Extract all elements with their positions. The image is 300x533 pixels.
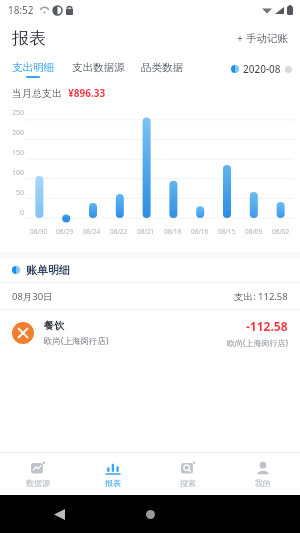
staticText: -112.58 xyxy=(246,318,288,334)
button[interactable]: 2020-08 xyxy=(231,62,292,76)
staticText: 08/29 xyxy=(56,227,74,236)
button[interactable]: 餐饮 xyxy=(0,310,300,356)
staticText: 150 xyxy=(11,148,24,158)
other: 我的 xyxy=(256,461,270,475)
staticText: 当月总支出 xyxy=(12,87,62,100)
staticText: 08/15 xyxy=(218,227,236,236)
staticText: 我的 xyxy=(255,478,271,488)
staticText: 欧尚(上海闵行店) xyxy=(44,335,109,347)
staticText: 250 xyxy=(11,108,24,118)
staticText: 0 xyxy=(19,208,24,218)
staticText: 08/18 xyxy=(164,227,182,236)
other: 搜索 xyxy=(181,461,195,475)
staticText: 08/02 xyxy=(272,227,290,236)
staticText: 餐饮 xyxy=(44,319,64,332)
button[interactable]: 搜索 xyxy=(150,453,225,495)
button[interactable]: 品类数据 xyxy=(141,61,183,78)
other: Back xyxy=(54,509,65,520)
staticText: 50 xyxy=(15,188,24,198)
staticText: 08/22 xyxy=(110,227,128,236)
staticText: 200 xyxy=(11,128,24,138)
button[interactable]: 支出明细 xyxy=(12,61,54,78)
other: 数据源 xyxy=(31,461,45,475)
staticText: 2020-08 xyxy=(243,62,281,76)
staticText: 支出: 112.58 xyxy=(234,290,288,303)
button[interactable]: 支出数据源 xyxy=(72,61,125,78)
staticText: 报表 xyxy=(12,28,46,49)
staticText: 账单明细 xyxy=(26,263,70,277)
other: Home xyxy=(146,510,155,519)
staticText: 08/09 xyxy=(245,227,263,236)
button[interactable]: 我的 xyxy=(225,453,300,495)
staticText: 08/30 xyxy=(30,227,48,236)
staticText: 100 xyxy=(11,168,24,178)
staticText: + 手动记账 xyxy=(237,31,288,45)
staticText: 支出明细 xyxy=(12,61,54,74)
staticText: 18:52 xyxy=(8,3,34,17)
staticText: 报表 xyxy=(105,478,121,488)
staticText: 08/24 xyxy=(83,227,101,236)
staticText: 08/21 xyxy=(137,227,155,236)
button[interactable]: 数据源 xyxy=(0,453,75,495)
staticText: 数据源 xyxy=(26,478,50,488)
other: 报表 xyxy=(106,461,120,475)
button[interactable]: 报表 xyxy=(75,453,150,495)
staticText: 08月30日 xyxy=(12,290,53,303)
staticText: 08/16 xyxy=(191,227,209,236)
staticText: 搜索 xyxy=(180,478,196,488)
button[interactable]: + 手动记账 xyxy=(235,27,290,49)
staticText: ¥896.33 xyxy=(68,86,106,100)
staticText: 欧尚(上海闵行店) xyxy=(227,337,288,348)
